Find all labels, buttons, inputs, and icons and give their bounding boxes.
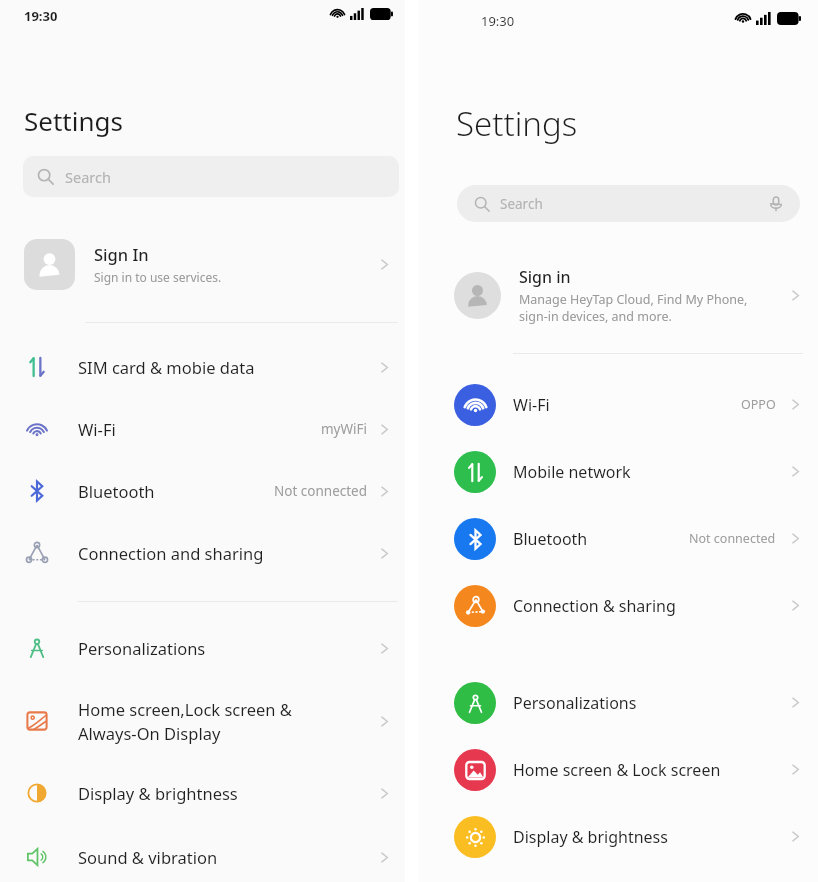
staticText: Always-On Display bbox=[78, 722, 221, 744]
staticText: 19:30 bbox=[24, 7, 58, 25]
staticText: Personalizations bbox=[513, 692, 789, 714]
staticText: Bluetooth bbox=[513, 528, 689, 550]
button[interactable]: Display & brightness bbox=[0, 767, 405, 819]
button[interactable]: Connection and sharing bbox=[0, 527, 405, 579]
button[interactable]: Wi-Fi bbox=[418, 379, 818, 430]
button[interactable]: Bluetooth bbox=[0, 465, 405, 517]
staticText: Sign in bbox=[519, 266, 571, 288]
staticText: Home screen & Lock screen bbox=[513, 759, 789, 781]
button[interactable]: Wi-Fi bbox=[0, 403, 405, 455]
staticText: Home screen,Lock screen & bbox=[78, 698, 292, 720]
staticText: Sign In bbox=[94, 243, 149, 265]
button[interactable]: Mobile network bbox=[418, 446, 818, 497]
button[interactable]: Sound & vibration bbox=[0, 831, 405, 882]
staticText: Not connected bbox=[274, 482, 368, 500]
staticText: Wi-Fi bbox=[78, 418, 321, 440]
button[interactable]: Home screen & Lock screen bbox=[418, 744, 818, 795]
staticText: Sign in to use services. bbox=[94, 269, 222, 285]
button[interactable]: Personalizations bbox=[418, 677, 818, 728]
staticText: Wi-Fi bbox=[513, 394, 741, 416]
button[interactable]: Bluetooth bbox=[418, 513, 818, 564]
staticText: Search bbox=[500, 195, 768, 213]
staticText: Manage HeyTap Cloud, Find My Phone, bbox=[519, 291, 748, 308]
button[interactable]: Home screen,Lock screen & bbox=[0, 690, 405, 752]
staticText: sign-in devices, and more. bbox=[519, 308, 672, 325]
staticText: Settings bbox=[24, 103, 123, 138]
button[interactable]: Connection & sharing bbox=[418, 580, 818, 631]
button[interactable]: Search bbox=[23, 156, 399, 197]
staticText: Display & brightness bbox=[78, 782, 378, 804]
other: Voice search bbox=[768, 196, 784, 212]
button[interactable]: Sign in bbox=[418, 258, 818, 332]
button[interactable]: Search bbox=[457, 185, 800, 222]
staticText: Search bbox=[65, 167, 111, 187]
staticText: 19:30 bbox=[481, 12, 515, 30]
staticText: Bluetooth bbox=[78, 480, 274, 502]
button[interactable]: Personalizations bbox=[0, 622, 405, 674]
button[interactable]: SIM card & mobie data bbox=[0, 341, 405, 393]
staticText: Mobile network bbox=[513, 461, 789, 483]
staticText: Display & brightness bbox=[513, 826, 789, 848]
button[interactable]: Sign In bbox=[0, 231, 405, 297]
button[interactable]: Display & brightness bbox=[418, 811, 818, 862]
staticText: Personalizations bbox=[78, 637, 378, 659]
staticText: Sound & vibration bbox=[78, 846, 378, 868]
staticText: Connection & sharing bbox=[513, 595, 789, 617]
staticText: OPPO bbox=[741, 396, 776, 413]
staticText: Settings bbox=[456, 101, 578, 146]
staticText: SIM card & mobie data bbox=[78, 356, 378, 378]
staticText: Connection and sharing bbox=[78, 542, 378, 564]
staticText: Not connected bbox=[689, 530, 776, 547]
staticText: myWiFi bbox=[321, 420, 368, 438]
